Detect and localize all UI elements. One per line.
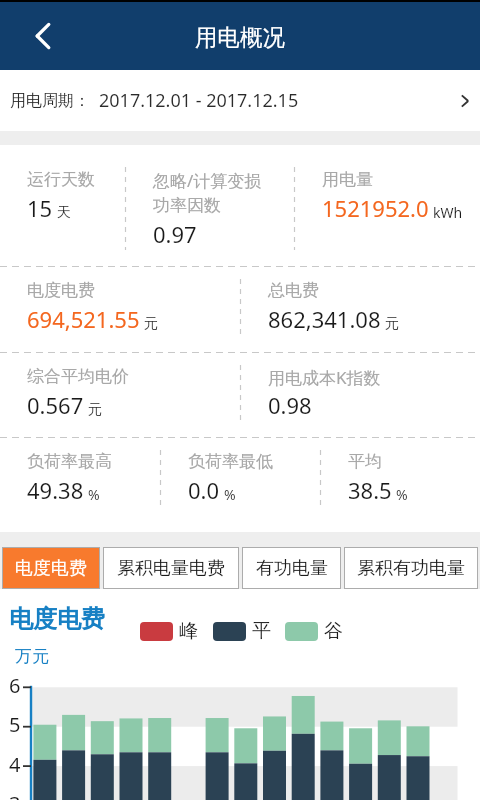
staticText: 总电费 [268, 280, 319, 301]
staticText: 用电周期： [10, 91, 90, 111]
staticText: 平 [252, 619, 271, 643]
staticText: 忽略/计算变损 [153, 169, 262, 192]
staticText: 峰 [179, 619, 198, 643]
staticText: 6 [9, 672, 21, 699]
staticText: 862,341.08 [268, 304, 381, 334]
button[interactable]: 有功电量 [242, 547, 341, 589]
staticText: 3 [9, 790, 21, 800]
staticText: 综合平均电价 [27, 366, 129, 387]
staticText: 38.5 [348, 475, 392, 505]
staticText: 累积有功电量 [357, 557, 465, 580]
button[interactable]: Back [0, 2, 68, 70]
staticText: 功率因数 [153, 195, 221, 216]
button[interactable]: 电度电费 [2, 547, 100, 589]
staticText: 0.98 [268, 390, 312, 420]
staticText: % [224, 485, 236, 504]
staticText: 15 [27, 193, 53, 223]
staticText: 负荷率最高 [27, 451, 112, 472]
staticText: 0.97 [153, 219, 197, 249]
staticText: 万元 [15, 646, 49, 667]
staticText: % [396, 485, 408, 504]
staticText: 元 [88, 401, 102, 419]
button[interactable]: 累积电量电费 [103, 547, 239, 589]
staticText: 电度电费 [9, 604, 105, 634]
staticText: % [88, 485, 100, 504]
staticText: 1521952.0 [322, 193, 429, 223]
staticText: 694,521.55 [27, 304, 140, 334]
staticText: 运行天数 [27, 169, 95, 190]
staticText: 4 [9, 751, 21, 778]
staticText: 电度电费 [15, 557, 87, 580]
staticText: kWh [433, 203, 463, 222]
staticText: 谷 [324, 619, 343, 643]
button[interactable]: 用电周期： [0, 70, 480, 131]
staticText: 负荷率最低 [188, 451, 273, 472]
staticText: 元 [144, 315, 158, 333]
staticText: 元 [385, 315, 399, 333]
button[interactable]: 累积有功电量 [344, 547, 478, 589]
staticText: 用电成本K指数 [268, 366, 381, 389]
staticText: 49.38 [27, 475, 84, 505]
staticText: 0.567 [27, 390, 84, 420]
staticText: 用电量 [322, 169, 373, 190]
staticText: 0.0 [188, 475, 220, 505]
staticText: 天 [57, 204, 71, 222]
staticText: 平均 [348, 451, 382, 472]
staticText: 累积电量电费 [117, 557, 225, 580]
staticText: 5 [9, 711, 21, 738]
staticText: 2017.12.01 - 2017.12.15 [99, 88, 299, 113]
staticText: 有功电量 [256, 557, 328, 580]
staticText: 用电概况 [195, 23, 285, 51]
staticText: 电度电费 [27, 280, 95, 301]
